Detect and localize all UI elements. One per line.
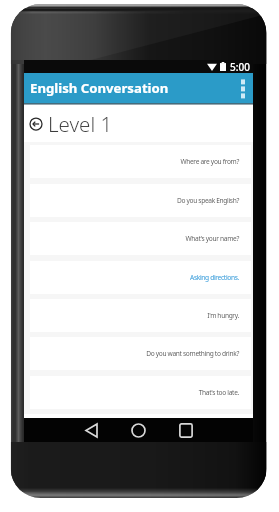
button[interactable]: Back	[79, 418, 103, 442]
button[interactable]: That's too late.	[30, 376, 251, 409]
staticText: I'm hungry.	[207, 311, 239, 320]
staticText: Level 1	[48, 110, 113, 138]
staticText: Asking directions.	[190, 273, 239, 282]
button[interactable]: Recent apps	[174, 418, 198, 442]
button[interactable]: Home	[126, 418, 150, 442]
staticText: Where are you from?	[180, 157, 239, 166]
other: Back	[29, 117, 43, 131]
button[interactable]: Where are you from?	[30, 145, 251, 178]
staticText: That's too late.	[198, 388, 239, 397]
staticText: What's your name?	[185, 234, 239, 243]
button[interactable]: Back	[24, 105, 253, 142]
staticText: Do you speak English?	[176, 196, 239, 205]
staticText: 5:00	[230, 60, 250, 73]
staticText: Do you want something to drink?	[146, 349, 239, 358]
button[interactable]: Asking directions.	[30, 261, 251, 294]
staticText: English Conversation	[30, 79, 169, 97]
button[interactable]: I'm hungry.	[30, 299, 251, 332]
button[interactable]: What's your name?	[30, 222, 251, 255]
button[interactable]: Do you speak English?	[30, 184, 251, 217]
button[interactable]: More options	[233, 73, 253, 103]
button[interactable]: Do you want something to drink?	[30, 337, 251, 370]
